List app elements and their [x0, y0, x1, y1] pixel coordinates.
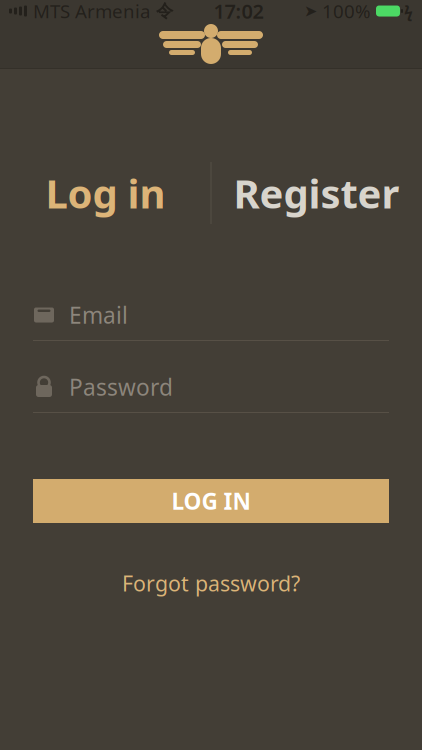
button[interactable]: Forgot password?: [98, 559, 324, 607]
staticText: 令: [156, 0, 173, 22]
staticText: Log in: [45, 166, 165, 219]
staticText: MTS Armenia: [33, 0, 150, 23]
button[interactable]: Register: [211, 145, 422, 241]
staticText: Register: [233, 166, 399, 219]
staticText: Forgot password?: [122, 569, 300, 597]
staticText: 100%: [322, 0, 371, 23]
staticText: Email: [69, 300, 128, 330]
button[interactable]: LOG IN: [33, 479, 389, 523]
button[interactable]: Log in: [0, 145, 211, 241]
staticText: Password: [69, 372, 173, 402]
staticText: ➤: [304, 2, 317, 20]
staticText: 17:02: [213, 0, 263, 24]
staticText: ϟ: [404, 0, 413, 22]
staticText: LOG IN: [171, 486, 250, 516]
